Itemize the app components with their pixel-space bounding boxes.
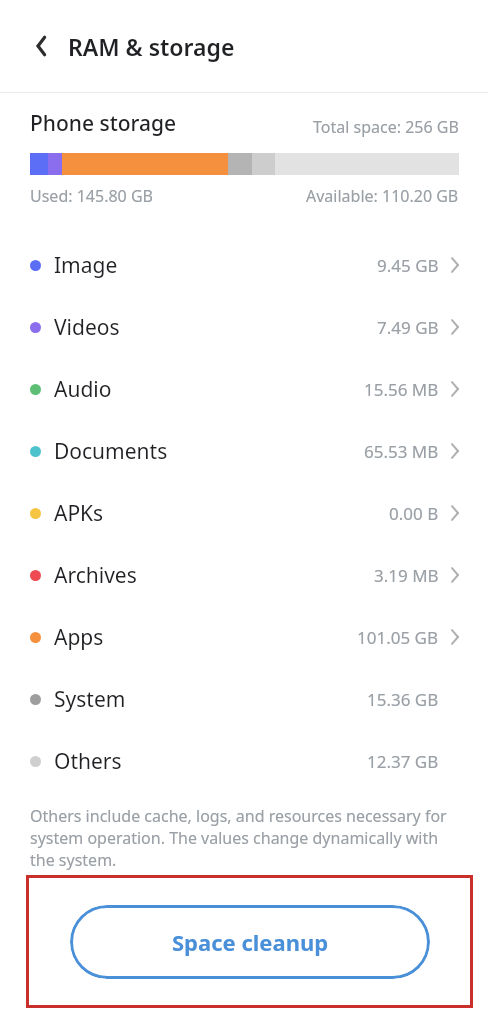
staticText: Phone storage [30, 109, 177, 138]
staticText: RAM & storage [68, 31, 235, 62]
staticText: 7.49 GB [377, 316, 439, 339]
button[interactable]: Archives [0, 544, 488, 606]
button[interactable]: Back [22, 26, 62, 66]
button[interactable]: APKs [0, 482, 488, 544]
staticText: Total space: 256 GB [313, 116, 459, 138]
staticText: Videos [54, 313, 120, 342]
staticText: APKs [54, 499, 104, 528]
staticText: 15.56 MB [364, 378, 439, 401]
staticText: System [54, 685, 126, 714]
staticText: Others include cache, logs, and resource… [30, 805, 462, 871]
staticText: Others [54, 747, 122, 776]
button[interactable]: Audio [0, 358, 488, 420]
button[interactable]: Documents [0, 420, 488, 482]
staticText: 15.36 GB [367, 688, 439, 711]
staticText: Space cleanup [172, 927, 329, 957]
staticText: Apps [54, 623, 104, 652]
button[interactable]: Image [0, 234, 488, 296]
staticText: 9.45 GB [377, 254, 439, 277]
staticText: 101.05 GB [357, 626, 439, 649]
button[interactable]: System [0, 668, 488, 730]
staticText: 65.53 MB [364, 440, 439, 463]
staticText: Documents [54, 437, 168, 466]
staticText: Audio [54, 375, 112, 404]
staticText: Image [54, 251, 118, 280]
button[interactable]: Videos [0, 296, 488, 358]
staticText: Archives [54, 561, 137, 590]
button[interactable]: Others [0, 730, 488, 792]
button[interactable]: Apps [0, 606, 488, 668]
staticText: Available: 110.20 GB [306, 185, 459, 207]
staticText: 12.37 GB [367, 750, 439, 773]
staticText: 0.00 B [389, 502, 439, 525]
button[interactable]: Space cleanup [70, 905, 430, 979]
staticText: 3.19 MB [374, 564, 439, 587]
staticText: Used: 145.80 GB [30, 185, 153, 207]
